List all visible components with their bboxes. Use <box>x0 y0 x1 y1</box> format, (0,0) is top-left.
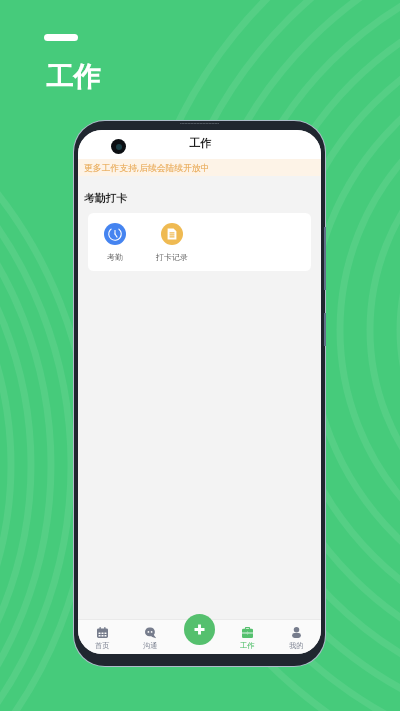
button[interactable]: 工作 <box>223 620 272 650</box>
button[interactable]: Add <box>184 614 215 645</box>
button[interactable]: 我的 <box>272 620 321 650</box>
staticText: 更多工作支持,后续会陆续开放中 <box>84 162 210 174</box>
staticText: 工作 <box>46 60 100 94</box>
staticText: 工作 <box>240 641 255 650</box>
staticText: 我的 <box>289 641 304 650</box>
button[interactable]: 考勤 <box>96 223 134 262</box>
staticText: 首页 <box>95 641 110 650</box>
button[interactable]: 首页 <box>78 620 126 650</box>
staticText: 考勤打卡 <box>84 192 128 206</box>
staticText: 打卡记录 <box>156 252 188 262</box>
staticText: 考勤 <box>107 252 123 262</box>
button[interactable]: 打卡记录 <box>153 223 191 262</box>
staticText: 工作 <box>189 136 211 150</box>
button[interactable]: 沟通 <box>126 620 174 650</box>
staticText: 沟通 <box>143 641 158 650</box>
